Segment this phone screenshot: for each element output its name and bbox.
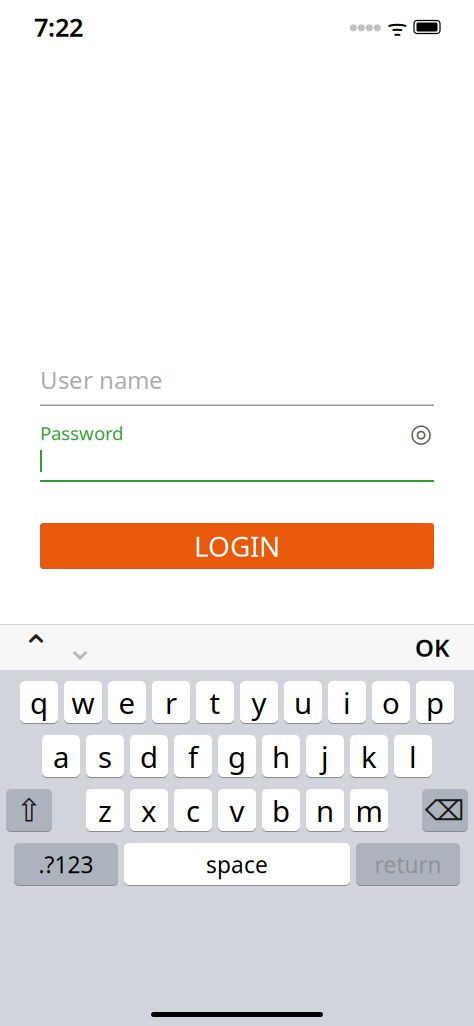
staticText: i: [343, 683, 351, 722]
staticText: ⌃: [21, 628, 50, 667]
staticText: User name: [40, 364, 163, 395]
button[interactable]: t: [196, 681, 234, 724]
staticText: q: [30, 683, 48, 722]
staticText: ◎: [410, 419, 432, 447]
staticText: n: [316, 791, 334, 830]
button[interactable]: b: [262, 789, 300, 832]
button[interactable]: q: [20, 681, 58, 724]
staticText: ●●●●: [349, 22, 381, 32]
button[interactable]: d: [130, 735, 168, 778]
button[interactable]: v: [218, 789, 256, 832]
staticText: ⌄: [65, 628, 94, 667]
button[interactable]: r: [152, 681, 190, 724]
button[interactable]: e: [108, 681, 146, 724]
button[interactable]: a: [42, 735, 80, 778]
button[interactable]: n: [306, 789, 344, 832]
staticText: j: [321, 737, 329, 776]
staticText: ⇧: [15, 792, 42, 829]
button[interactable]: i: [328, 681, 366, 724]
button[interactable]: u: [284, 681, 322, 724]
staticText: m: [355, 791, 382, 830]
button[interactable]: w: [64, 681, 102, 724]
staticText: u: [294, 683, 312, 722]
staticText: v: [229, 791, 244, 830]
staticText: o: [382, 683, 400, 722]
staticText: return: [374, 849, 441, 879]
button[interactable]: m: [350, 789, 388, 832]
staticText: ⌫: [425, 795, 465, 826]
button[interactable]: j: [306, 735, 344, 778]
button[interactable]: OK: [405, 627, 460, 667]
staticText: t: [209, 683, 220, 722]
staticText: 7:22: [34, 10, 83, 44]
button[interactable]: space: [124, 843, 350, 886]
staticText: space: [206, 849, 268, 879]
staticText: Password: [40, 421, 123, 445]
button[interactable]: return: [356, 843, 460, 886]
staticText: e: [118, 683, 135, 722]
button[interactable]: LOGIN: [40, 523, 434, 569]
staticText: LOGIN: [194, 527, 280, 565]
staticText: b: [272, 791, 290, 830]
button[interactable]: g: [218, 735, 256, 778]
button[interactable]: l: [394, 735, 432, 778]
button[interactable]: f: [174, 735, 212, 778]
button[interactable]: p: [416, 681, 454, 724]
button[interactable]: x: [130, 789, 168, 832]
button[interactable]: h: [262, 735, 300, 778]
staticText: k: [361, 737, 377, 776]
button[interactable]: Previous field: [14, 627, 58, 667]
button[interactable]: s: [86, 735, 124, 778]
button[interactable]: c: [174, 789, 212, 832]
staticText: ᯤ: [387, 12, 408, 42]
button[interactable]: Show password: [408, 420, 434, 446]
staticText: p: [426, 683, 444, 722]
staticText: w: [71, 683, 94, 722]
staticText: y: [251, 683, 266, 722]
staticText: s: [98, 737, 112, 776]
staticText: d: [140, 737, 158, 776]
staticText: c: [186, 791, 200, 830]
staticText: h: [272, 737, 290, 776]
staticText: OK: [415, 632, 450, 663]
staticText: .?123: [38, 849, 93, 879]
staticText: r: [165, 683, 177, 722]
staticText: g: [228, 737, 246, 776]
staticText: f: [188, 737, 198, 776]
button[interactable]: k: [350, 735, 388, 778]
button[interactable]: Delete: [422, 789, 468, 832]
staticText: a: [53, 737, 69, 776]
button[interactable]: .?123: [14, 843, 118, 886]
button[interactable]: o: [372, 681, 410, 724]
button[interactable]: Shift: [6, 789, 52, 832]
button[interactable]: y: [240, 681, 278, 724]
staticText: z: [98, 791, 112, 830]
button[interactable]: Next field: [58, 627, 102, 667]
button[interactable]: z: [86, 789, 124, 832]
staticText: l: [409, 737, 417, 776]
staticText: x: [141, 791, 157, 830]
